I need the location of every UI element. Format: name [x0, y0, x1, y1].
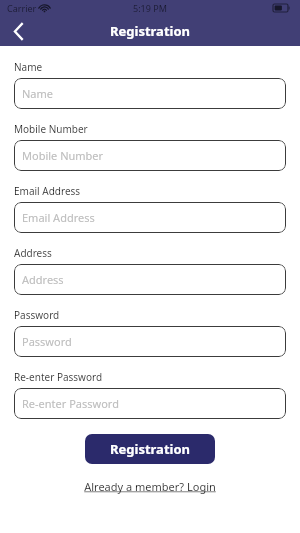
staticText: Password [22, 334, 72, 349]
button[interactable]: Mobile Number [14, 140, 286, 171]
staticText: Password [14, 308, 60, 322]
button[interactable]: Back [0, 16, 36, 46]
button[interactable]: Already a member? Login [78, 477, 222, 496]
staticText: 5:19 PM [133, 2, 167, 14]
staticText: Re-enter Password [14, 370, 103, 384]
staticText: Registration [110, 440, 191, 458]
staticText: Mobile Number [22, 148, 104, 163]
staticText: Address [14, 246, 52, 260]
button[interactable]: Re-enter Password [14, 388, 286, 419]
staticText: Address [22, 272, 64, 287]
button[interactable]: Password [14, 326, 286, 357]
staticText: Registration [110, 22, 191, 40]
staticText: Email Address [14, 184, 81, 198]
staticText: Email Address [22, 210, 95, 225]
staticText: Carrier [7, 2, 37, 14]
button[interactable]: Address [14, 264, 286, 295]
button[interactable]: Registration [85, 434, 215, 464]
button[interactable]: Email Address [14, 202, 286, 233]
staticText: Name [14, 60, 43, 74]
staticText: Name [22, 86, 54, 101]
button[interactable]: Name [14, 78, 286, 109]
staticText: Mobile Number [14, 122, 88, 136]
staticText: Re-enter Password [22, 396, 119, 411]
staticText: Already a member? Login [84, 479, 216, 494]
